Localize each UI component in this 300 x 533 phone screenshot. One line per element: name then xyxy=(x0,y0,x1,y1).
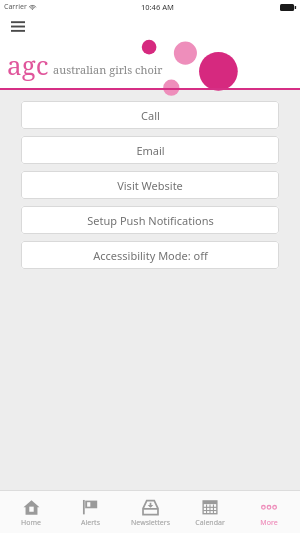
staticText: 10:46 AM xyxy=(141,2,174,12)
button[interactable]: Visit Website xyxy=(21,171,279,199)
staticText: Accessibility Mode: off xyxy=(93,248,208,263)
button[interactable]: Accessibility Mode: off xyxy=(21,241,279,269)
staticText: Visit Website xyxy=(117,178,183,193)
staticText: Email xyxy=(136,143,165,158)
button[interactable]: Alerts xyxy=(61,491,119,533)
staticText: Newsletters xyxy=(131,518,170,528)
button[interactable]: Menu xyxy=(6,14,30,38)
button[interactable]: Calendar xyxy=(181,491,239,533)
button[interactable]: Call xyxy=(21,101,279,129)
staticText: Calendar xyxy=(195,518,225,528)
staticText: Home xyxy=(21,518,41,528)
staticText: Setup Push Notifications xyxy=(87,213,214,228)
button[interactable]: Setup Push Notifications xyxy=(21,206,279,234)
staticText: More xyxy=(260,518,278,528)
button[interactable]: Newsletters xyxy=(121,491,179,533)
button[interactable]: More xyxy=(240,491,298,533)
staticText: australian girls choir xyxy=(53,62,163,77)
button[interactable]: Home xyxy=(2,491,60,533)
staticText: Call xyxy=(141,108,160,123)
staticText: agc xyxy=(7,47,49,82)
staticText: Alerts xyxy=(81,518,100,528)
staticText: Carrier xyxy=(4,2,27,12)
button[interactable]: Email xyxy=(21,136,279,164)
